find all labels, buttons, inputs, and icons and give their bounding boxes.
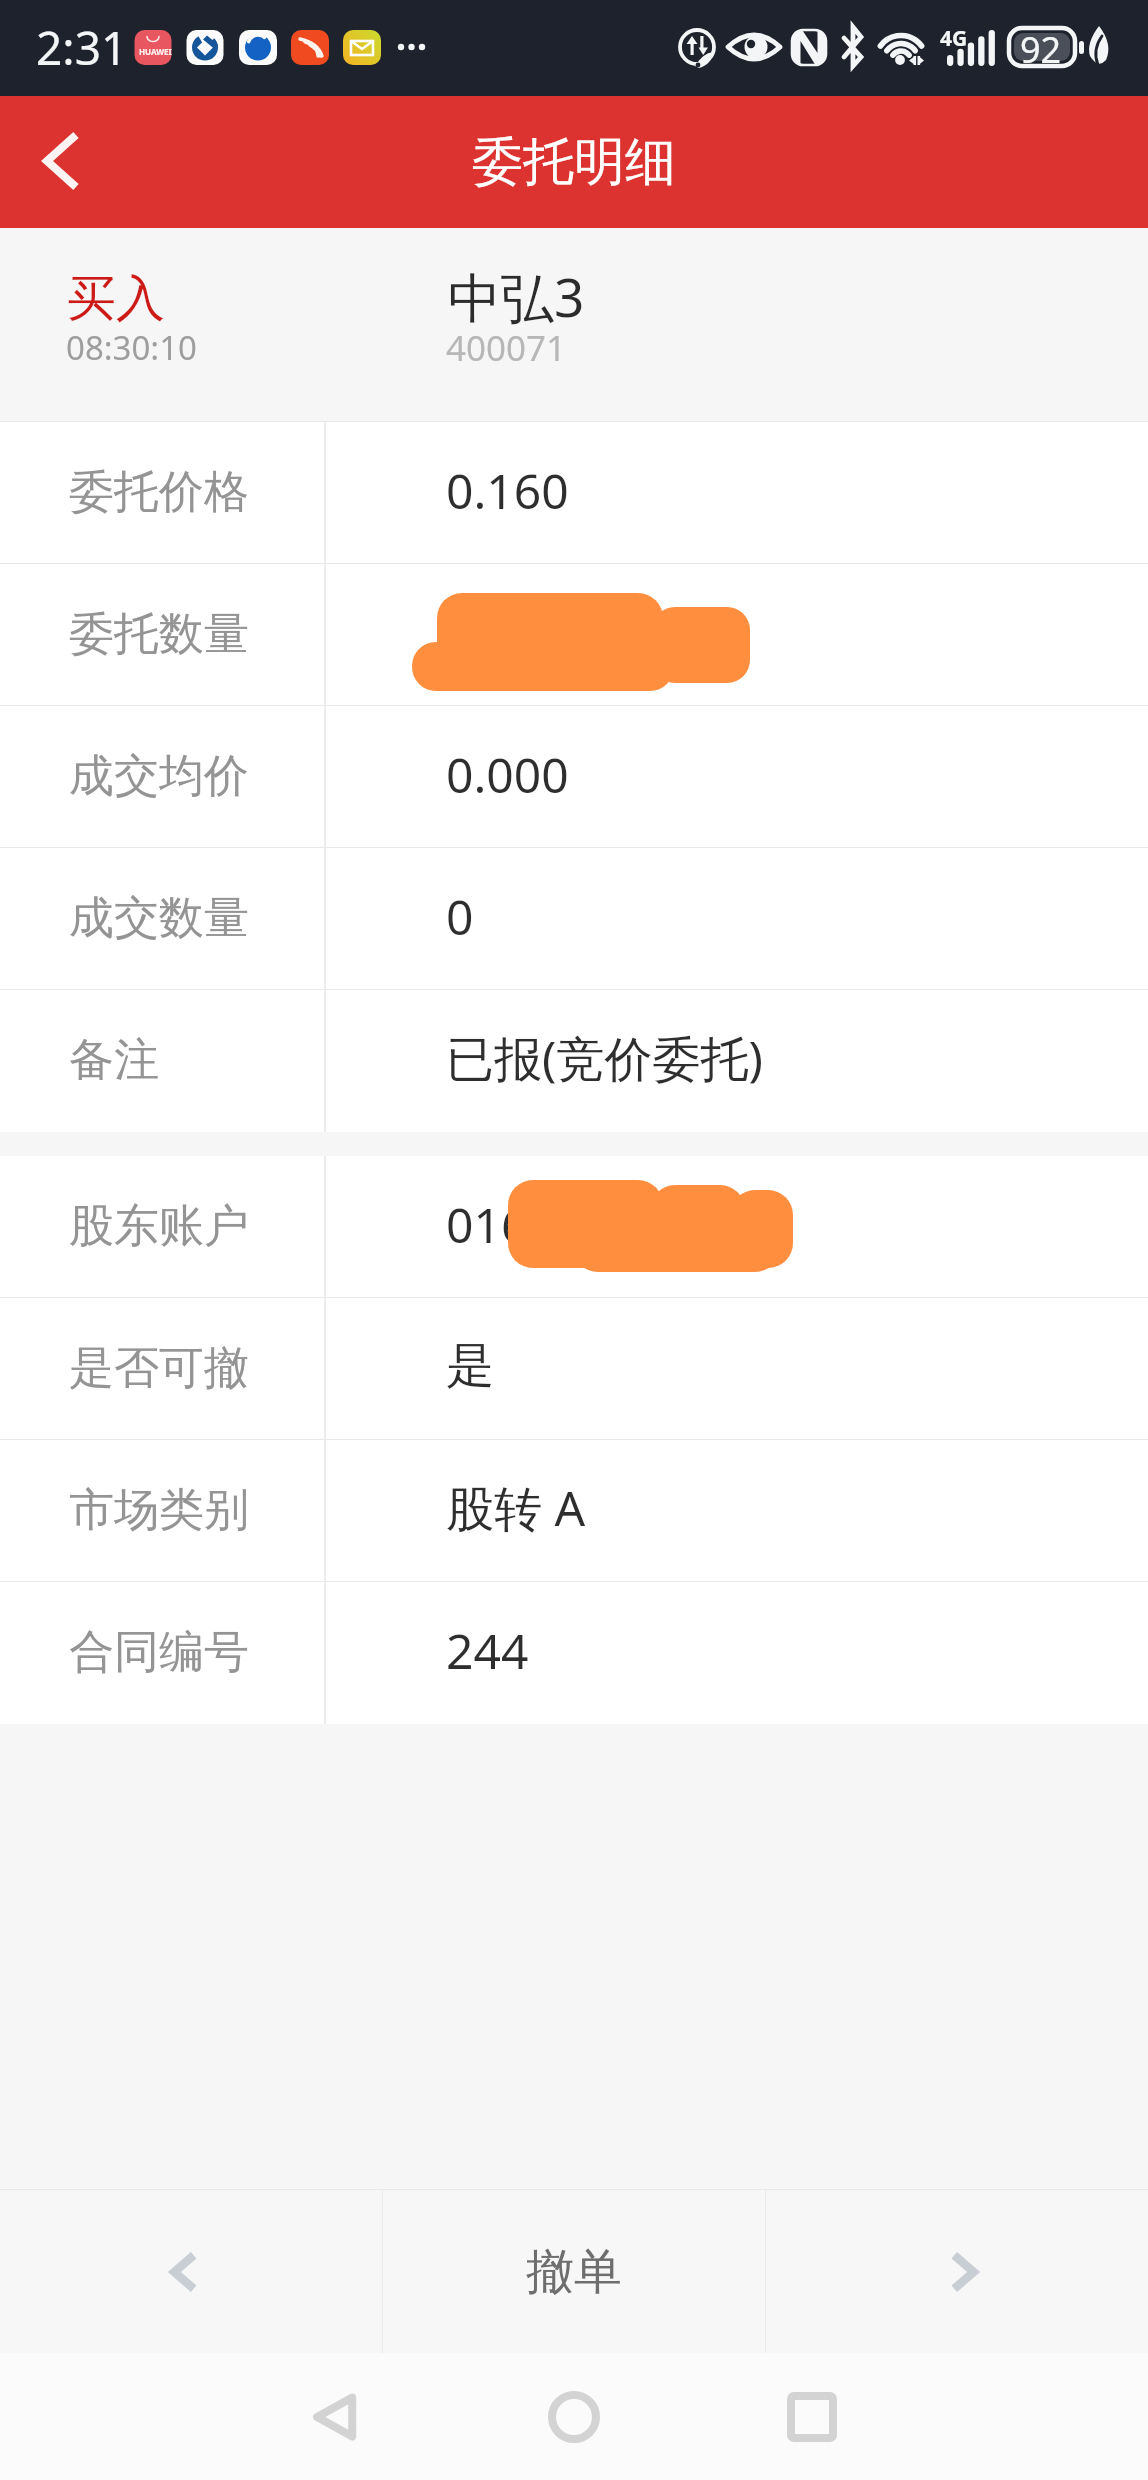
staticText: 成交均价 — [69, 748, 249, 805]
button[interactable]: 委托价格 — [0, 422, 1148, 564]
staticText: 016 — [446, 1192, 529, 1257]
button[interactable]: Next order — [766, 2190, 1148, 2353]
staticText: 股转 A — [446, 1475, 586, 1541]
button[interactable]: 股东账户 — [0, 1156, 1148, 1298]
staticText: 已报(竞价委托) — [446, 1025, 763, 1091]
button[interactable]: 市场类别 — [0, 1440, 1148, 1582]
staticText: 244 — [446, 1618, 529, 1683]
staticText: 委托数量 — [69, 606, 249, 663]
staticText: 撤单 — [526, 2242, 622, 2302]
button[interactable]: Previous order — [0, 2190, 382, 2353]
staticText: 0.160 — [446, 458, 569, 523]
staticText: 是否可撤 — [69, 1340, 249, 1397]
button[interactable]: 备注 — [0, 990, 1148, 1132]
button[interactable]: 合同编号 — [0, 1582, 1148, 1724]
staticText: HUAWEI — [139, 46, 172, 57]
button[interactable]: 成交数量 — [0, 848, 1148, 990]
staticText: 0.000 — [446, 742, 569, 807]
button[interactable]: 委托数量 — [0, 564, 1148, 706]
staticText: 92 — [1020, 25, 1062, 74]
button[interactable]: Back — [0, 96, 136, 228]
staticText: 0 — [446, 884, 474, 949]
staticText: 股东账户 — [69, 1198, 249, 1255]
button[interactable]: Back — [306, 2353, 366, 2480]
staticText: 委托明细 — [472, 130, 676, 194]
staticText: 08:30:10 — [66, 325, 197, 370]
staticText: 委托价格 — [69, 464, 249, 521]
button[interactable]: 成交均价 — [0, 706, 1148, 848]
staticText: 市场类别 — [69, 1482, 249, 1539]
staticText: 买入 — [67, 268, 165, 330]
staticText: 是 — [446, 1336, 494, 1396]
button[interactable]: 是否可撤 — [0, 1298, 1148, 1440]
staticText: 成交数量 — [69, 890, 249, 947]
staticText: 4G — [940, 24, 968, 53]
staticText: 2:31 — [36, 16, 128, 79]
staticText: 备注 — [69, 1032, 159, 1089]
button[interactable]: Recent apps — [782, 2353, 842, 2480]
staticText: 中弘3 — [448, 260, 585, 332]
button[interactable]: 撤单 — [383, 2190, 765, 2353]
staticText: 合同编号 — [69, 1624, 249, 1681]
button[interactable]: Home — [544, 2353, 604, 2480]
staticText: 400071 — [446, 324, 567, 372]
